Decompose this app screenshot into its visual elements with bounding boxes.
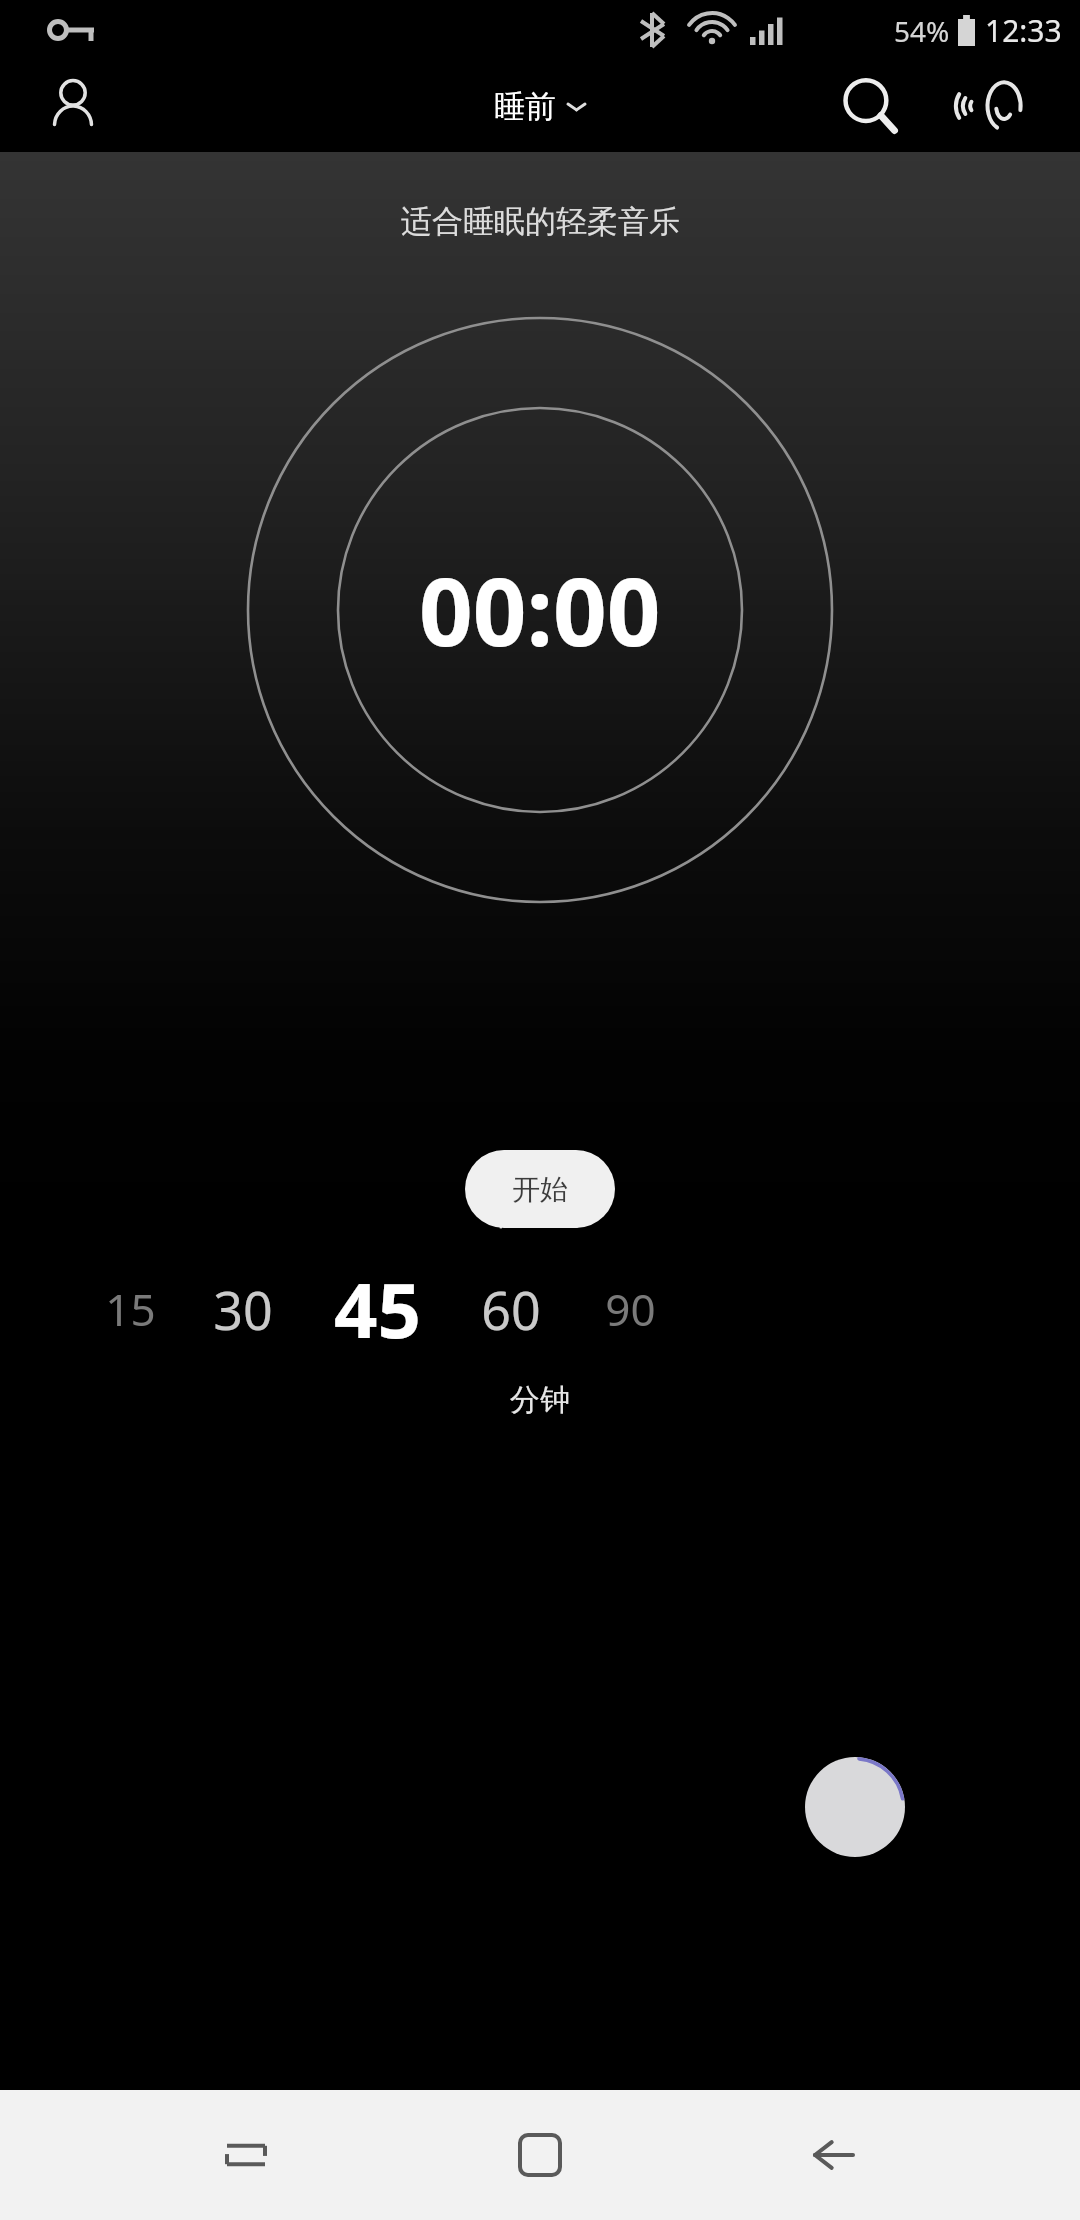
- button[interactable]: Account: [40, 73, 106, 139]
- button[interactable]: 45: [323, 1255, 431, 1363]
- staticText: 适合睡眠的轻柔音乐: [401, 202, 680, 241]
- staticText: 12:33: [985, 10, 1062, 51]
- staticText: 开始: [512, 1172, 568, 1207]
- button[interactable]: Recents: [198, 2107, 294, 2203]
- button[interactable]: 睡前: [494, 87, 587, 126]
- staticText: 60: [481, 1274, 541, 1345]
- button[interactable]: Hearing: [958, 70, 1030, 142]
- staticText: 45: [334, 1257, 421, 1361]
- staticText: 15: [105, 1279, 156, 1339]
- button[interactable]: 60: [457, 1255, 565, 1363]
- button[interactable]: Search: [836, 72, 904, 140]
- button[interactable]: Back: [786, 2107, 882, 2203]
- staticText: 54%: [894, 12, 950, 50]
- staticText: 90: [605, 1279, 656, 1339]
- staticText: 00:00: [419, 546, 661, 674]
- staticText: 分钟: [510, 1381, 570, 1419]
- staticText: 睡前: [494, 87, 556, 126]
- button[interactable]: 30: [189, 1255, 297, 1363]
- button[interactable]: 开始: [465, 1150, 615, 1228]
- button[interactable]: Home: [492, 2107, 588, 2203]
- staticText: 30: [213, 1274, 273, 1345]
- button[interactable]: 15: [76, 1255, 184, 1363]
- button[interactable]: 90: [576, 1255, 684, 1363]
- staticText: 倒计时: [495, 1195, 585, 1233]
- button[interactable]: Play: [805, 1757, 905, 1857]
